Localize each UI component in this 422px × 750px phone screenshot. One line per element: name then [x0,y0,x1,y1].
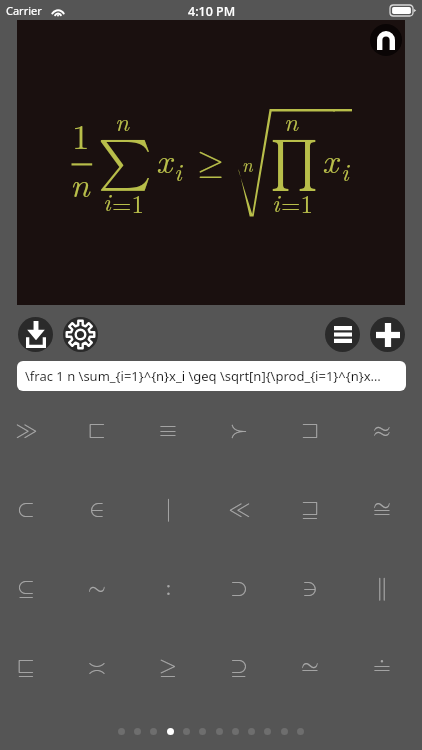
staticText: ⊃ [230,576,248,599]
button[interactable]: ∼ [62,548,132,627]
button[interactable] [232,728,239,735]
staticText: n [70,158,90,208]
button[interactable]: Download [18,317,53,352]
button[interactable]: ≥ [133,627,203,706]
button[interactable]: Settings [63,317,98,352]
staticText: ≡ [159,418,177,441]
staticText: n [115,103,130,138]
staticText: ⊒ [301,497,319,520]
staticText: ≥ [197,146,225,181]
button[interactable] [118,728,125,735]
staticText: i [341,153,349,188]
staticText: ≃ [301,655,319,678]
staticText: ≍ [88,655,106,678]
staticText: i [174,153,182,188]
staticText: ≻ [230,418,248,441]
staticText: ≫ [15,418,38,441]
button[interactable]: ≍ [62,627,132,706]
staticText: ∋ [302,576,318,599]
staticText: 1 [72,110,90,160]
button[interactable] [183,728,190,735]
button[interactable] [134,728,141,735]
button[interactable]: ≫ [0,390,61,469]
staticText: ⊆ [17,576,35,599]
staticText: Carrier [6,3,42,18]
staticText: ≥ [159,655,177,678]
staticText: ⊇ [230,655,248,678]
staticText: ∈ [89,497,105,520]
button[interactable]: ⊆ [0,548,61,627]
button[interactable]: ⊂ [0,469,61,548]
staticText: ≐ [373,655,391,678]
button[interactable]: ⊐ [275,390,345,469]
staticText: ⊐ [301,418,319,441]
button[interactable]: \frac 1 n \sum_{i=1}^{n}x_i \geq \sqrt[n… [17,361,406,391]
staticText: =1 [112,185,144,220]
button[interactable] [199,728,206,735]
button[interactable] [248,728,255,735]
staticText: ≅ [373,497,391,520]
button[interactable]: ∋ [275,548,345,627]
staticText: ⊏ [88,418,106,441]
button[interactable]: ⊇ [204,627,274,706]
staticText: i [272,184,280,219]
button[interactable] [297,728,304,735]
button[interactable]: ≃ [275,627,345,706]
staticText: x [156,134,173,184]
button[interactable]: ≈ [347,390,417,469]
staticText: x [322,134,339,184]
staticText: ≪ [228,497,251,520]
button[interactable]: ⊃ [204,548,274,627]
staticText: ≈ [373,418,391,441]
staticText: ⊂ [17,497,35,520]
button[interactable] [150,728,157,735]
staticText: i [103,183,111,218]
staticText: 4:10 PM [188,3,236,20]
staticText: \frac 1 n \sum_{i=1}^{n}x_i \geq \sqrt[n… [25,367,381,385]
button[interactable]: ≻ [204,390,274,469]
staticText: ∼ [88,576,106,599]
button[interactable] [167,728,174,735]
button[interactable]: ≅ [347,469,417,548]
staticText: ∣ [165,497,172,520]
staticText: ∏ [270,137,319,188]
staticText: ⊑ [17,655,35,678]
staticText: : [165,576,172,599]
button[interactable]: About [370,24,402,56]
staticText: ∑ [98,137,152,188]
button[interactable]: ∣ [133,469,203,548]
button[interactable]: ⊒ [275,469,345,548]
button[interactable]: ⊏ [62,390,132,469]
button[interactable]: ≡ [133,390,203,469]
staticText: =1 [281,185,313,220]
button[interactable] [281,728,288,735]
button[interactable]: Menu [325,317,360,352]
button[interactable]: ⊑ [0,627,61,706]
button[interactable]: Add [370,317,405,352]
button[interactable] [264,728,271,735]
button[interactable]: ≪ [204,469,274,548]
staticText: ∥ [376,576,388,599]
button[interactable] [216,728,223,735]
button[interactable]: ∥ [347,548,417,627]
button[interactable]: ∈ [62,469,132,548]
button[interactable]: ≐ [347,627,417,706]
staticText: n [242,151,253,178]
staticText: n [284,103,299,138]
